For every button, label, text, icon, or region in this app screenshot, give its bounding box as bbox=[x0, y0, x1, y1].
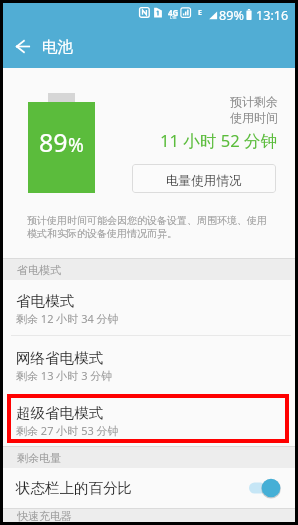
staticText: 电池 bbox=[42, 37, 73, 56]
staticText: 剩余 27 小时 53 分钟 bbox=[16, 423, 119, 438]
staticText: LTE bbox=[170, 15, 177, 20]
staticText: 13:16 bbox=[256, 7, 289, 24]
staticText: 剩余电量 bbox=[17, 451, 61, 465]
button[interactable]: 状态栏上的百分比 bbox=[3, 468, 295, 508]
staticText: 剩余 13 小时 3 分钟 bbox=[16, 368, 113, 383]
staticText: 超级省电模式 bbox=[16, 404, 103, 422]
button[interactable]: 网络省电模式 bbox=[3, 336, 295, 394]
staticText: 89% bbox=[219, 7, 244, 24]
staticText: 省电模式 bbox=[17, 263, 61, 277]
staticText: 省电模式 bbox=[16, 292, 74, 310]
button[interactable]: Back bbox=[3, 24, 42, 68]
staticText: 状态栏上的百分比 bbox=[16, 479, 132, 497]
button[interactable]: 省电模式 bbox=[3, 280, 295, 336]
staticText: 网络省电模式 bbox=[16, 349, 103, 367]
staticText: 剩余 12 小时 34 分钟 bbox=[16, 311, 119, 326]
staticText: 快速充电器 bbox=[17, 509, 72, 522]
staticText: 4G bbox=[168, 7, 179, 18]
staticText: 电量使用情况 bbox=[166, 173, 242, 189]
button[interactable]: 电量使用情况 bbox=[132, 164, 276, 193]
other: Toggle bbox=[249, 477, 281, 499]
staticText: % bbox=[68, 132, 84, 158]
button[interactable]: 超级省电模式 bbox=[3, 394, 295, 446]
staticText: E bbox=[198, 8, 202, 18]
staticText: 89 bbox=[39, 125, 68, 159]
staticText: 11 小时 52 分钟 bbox=[160, 129, 278, 152]
staticText: 预计使用时间可能会因您的设备设置、周围环境、使用 模式和实际的设备使用情况而异。 bbox=[27, 214, 267, 240]
staticText: 预计剩余 使用时间 bbox=[230, 94, 278, 125]
